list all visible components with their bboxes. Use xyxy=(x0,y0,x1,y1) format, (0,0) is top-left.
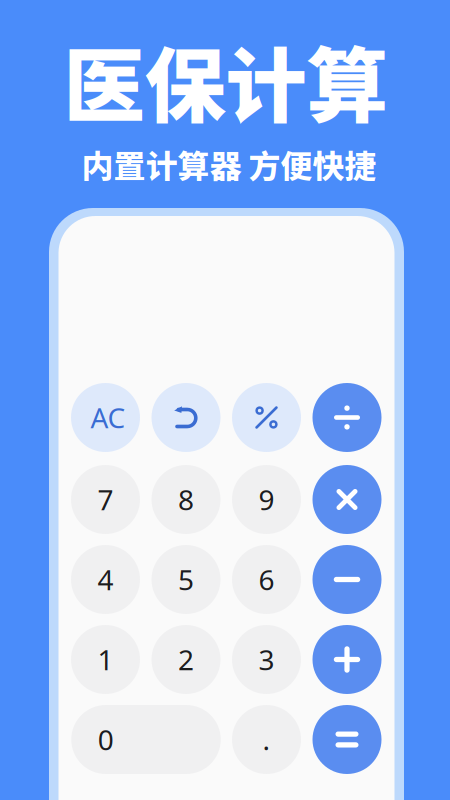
staticText: 7 xyxy=(97,481,113,518)
button[interactable]: 6 xyxy=(232,545,301,614)
staticText: 8 xyxy=(178,481,194,518)
button[interactable]: Subtract xyxy=(312,545,381,614)
button[interactable]: Undo xyxy=(151,383,220,452)
button[interactable]: 7 xyxy=(71,465,140,534)
button[interactable]: Equals xyxy=(312,705,381,774)
staticText: 3 xyxy=(258,641,274,678)
button[interactable]: Decimal point xyxy=(232,705,301,774)
staticText: 医保计算 xyxy=(63,21,387,139)
button[interactable]: All clear xyxy=(71,383,140,452)
button[interactable]: 0 xyxy=(71,705,221,774)
button[interactable]: 2 xyxy=(151,625,220,694)
button[interactable]: Divide xyxy=(312,383,381,452)
staticText: 4 xyxy=(97,561,113,598)
staticText: 内置计算器 方便快捷 xyxy=(81,141,376,187)
staticText: 2 xyxy=(178,641,194,678)
button[interactable]: 5 xyxy=(151,545,220,614)
staticText: 9 xyxy=(258,481,274,518)
button[interactable]: Add xyxy=(312,625,381,694)
staticText: 6 xyxy=(258,561,274,598)
staticText: 1 xyxy=(97,641,113,678)
staticText: 0 xyxy=(98,721,114,758)
staticText: AC xyxy=(90,399,125,436)
staticText: . xyxy=(262,721,270,758)
button[interactable]: Multiply xyxy=(312,465,381,534)
button[interactable]: 8 xyxy=(151,465,220,534)
button[interactable]: 4 xyxy=(71,545,140,614)
button[interactable]: 1 xyxy=(71,625,140,694)
staticText: 5 xyxy=(178,561,194,598)
button[interactable]: 9 xyxy=(232,465,301,534)
button[interactable]: Percent xyxy=(232,383,301,452)
button[interactable]: 3 xyxy=(232,625,301,694)
